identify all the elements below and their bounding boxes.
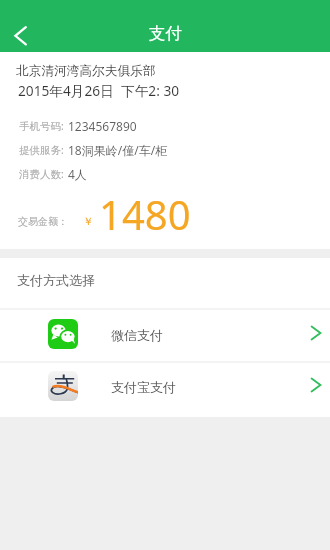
- staticText: 支付宝支付: [111, 379, 176, 395]
- staticText: 交易金额：: [18, 215, 68, 228]
- staticText: 消费人数:: [19, 167, 64, 181]
- staticText: 支付方式选择: [17, 272, 95, 288]
- staticText: 北京清河湾高尔夫俱乐部: [16, 63, 156, 79]
- staticText: 18洞果岭/僮/车/柜: [68, 142, 168, 158]
- staticText: 提供服务:: [19, 143, 64, 157]
- staticText: 2015年4月26日 下午2: 30: [18, 81, 180, 100]
- button[interactable]: 微信支付: [0, 310, 330, 361]
- button[interactable]: 支付宝支付: [0, 363, 330, 417]
- staticText: 手机号码:: [19, 119, 64, 133]
- staticText: 支付: [149, 23, 182, 44]
- staticText: 微信支付: [111, 327, 163, 343]
- staticText: 1480: [99, 187, 191, 241]
- staticText: 1234567890: [68, 118, 137, 134]
- button[interactable]: Back: [0, 16, 42, 56]
- staticText: ￥: [83, 215, 94, 228]
- staticText: 4人: [68, 166, 87, 182]
